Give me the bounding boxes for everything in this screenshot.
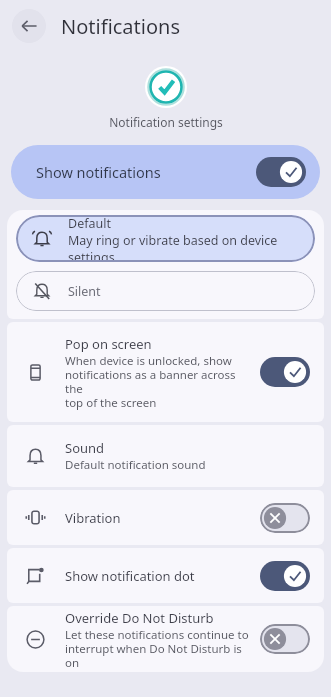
button[interactable]: Vibration [7,490,324,545]
staticText: Notifications [61,13,180,40]
staticText: When device is unlocked, show notificati… [65,353,252,410]
staticText: Override Do Not Disturb [65,609,214,627]
staticText: Vibration [65,509,121,527]
button[interactable]: Off [260,624,310,654]
staticText: Show notifications [36,162,161,182]
staticText: Default [68,215,111,232]
staticText: Sound [65,439,105,457]
button[interactable]: On [260,357,310,387]
other: Vibration [25,507,46,528]
button[interactable]: Default [16,215,315,262]
button[interactable]: On [256,157,306,187]
button[interactable]: Show notifications [11,145,320,199]
staticText: Show notification dot [65,567,195,585]
button[interactable]: Off [260,503,310,533]
other: Pop on screen [25,362,46,383]
staticText: Let these notifications continue to inte… [65,627,252,670]
button[interactable]: Silent [16,271,315,311]
other: Override Do Not Disturb [25,629,46,650]
other: Show notification dot [25,565,46,586]
button[interactable]: Override Do Not Disturb [7,606,324,672]
staticText: Notification settings [109,114,223,130]
other: Sound [25,446,46,467]
staticText: Pop on screen [65,335,152,353]
button[interactable]: On [260,561,310,591]
button[interactable]: Pop on screen [7,322,324,422]
button[interactable]: Back [12,9,46,43]
staticText: Silent [68,283,101,300]
staticText: May ring or vibrate based on device sett… [68,232,315,262]
staticText: Default notification sound [65,457,206,473]
button[interactable]: Show notification dot [7,548,324,603]
button[interactable]: Sound [7,425,324,487]
